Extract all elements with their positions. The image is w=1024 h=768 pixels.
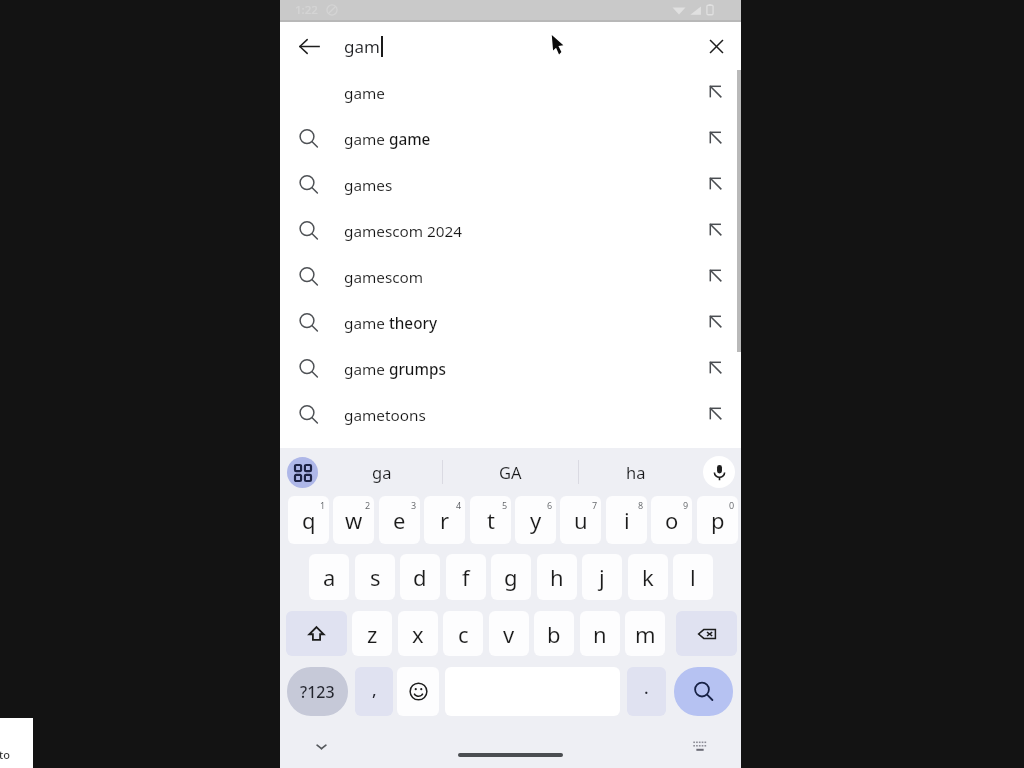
button[interactable]: ?123 (287, 667, 348, 716)
button[interactable]: Emoji (397, 667, 439, 716)
button[interactable]: w (333, 496, 374, 544)
button[interactable]: x (398, 611, 438, 656)
staticText: game (344, 83, 385, 104)
staticText: o (665, 505, 679, 535)
button[interactable]: game grumps (280, 346, 741, 392)
button[interactable]: t (470, 496, 511, 544)
button[interactable]: d (400, 554, 440, 600)
staticText: c (458, 619, 469, 649)
button[interactable]: gametoons (280, 392, 741, 438)
button[interactable]: Hide keyboard (307, 732, 335, 760)
button[interactable]: gamescom (280, 254, 741, 300)
staticText: l (690, 562, 696, 592)
button[interactable]: s (355, 554, 395, 600)
button[interactable]: b (534, 611, 574, 656)
button[interactable]: games (280, 162, 741, 208)
staticText: 4 (456, 499, 462, 511)
staticText: 1 (320, 499, 326, 511)
button[interactable]: Clear search (699, 29, 733, 63)
staticText: j (599, 562, 605, 592)
staticText: s (370, 562, 381, 592)
staticText: games (344, 175, 393, 196)
staticText: f (462, 562, 470, 592)
button[interactable]: Keyboard toolbar (287, 457, 318, 488)
button[interactable]: a (309, 554, 349, 600)
staticText: n (593, 619, 607, 649)
staticText: 5 (502, 499, 508, 511)
staticText: e (393, 505, 406, 535)
button[interactable]: Backspace (676, 611, 737, 656)
button[interactable]: Voice input (703, 456, 735, 488)
button[interactable]: e (379, 496, 420, 544)
button[interactable]: u (560, 496, 601, 544)
staticText: w (345, 505, 363, 535)
button[interactable]: k (628, 554, 668, 600)
button[interactable]: ha (579, 448, 693, 496)
staticText: 1:22 (295, 2, 318, 18)
button[interactable]: game (280, 70, 741, 116)
staticText: game game (344, 129, 431, 150)
button[interactable]: n (580, 611, 620, 656)
staticText: i (624, 505, 630, 535)
button[interactable]: Change keyboard (688, 734, 712, 758)
staticText: ha (626, 461, 646, 483)
button[interactable]: gamescom 2024 (280, 208, 741, 254)
staticText: r (440, 505, 450, 535)
staticText: t (487, 505, 495, 535)
staticText: 8 (638, 499, 644, 511)
button[interactable]: v (489, 611, 529, 656)
button[interactable]: GA (443, 448, 578, 496)
staticText: ga (372, 461, 392, 483)
button[interactable]: Search (674, 667, 733, 716)
button[interactable]: game theory (280, 300, 741, 346)
staticText: 0 (729, 499, 735, 511)
staticText: v (503, 619, 515, 649)
button[interactable]: y (515, 496, 556, 544)
staticText: p (711, 505, 725, 535)
staticText: gam (344, 35, 380, 58)
button[interactable]: ga (322, 448, 442, 496)
staticText: gametoons (344, 405, 426, 426)
button[interactable]: j (582, 554, 622, 600)
staticText: 7 (592, 499, 598, 511)
button[interactable]: l (673, 554, 713, 600)
staticText: 9 (683, 499, 689, 511)
button[interactable]: p (697, 496, 738, 544)
staticText: , (372, 678, 377, 701)
staticText: game theory (344, 313, 438, 334)
staticText: ?123 (300, 681, 335, 703)
staticText: g (504, 562, 518, 592)
button[interactable]: c (443, 611, 483, 656)
button[interactable]: h (537, 554, 577, 600)
staticText: q (302, 505, 316, 535)
button[interactable]: Back (292, 29, 326, 63)
button[interactable]: Shift (286, 611, 347, 656)
button[interactable]: f (446, 554, 486, 600)
staticText: m (635, 619, 656, 649)
staticText: . (644, 676, 649, 699)
staticText: 6 (547, 499, 553, 511)
button[interactable]: g (491, 554, 531, 600)
button[interactable]: . (627, 667, 666, 716)
staticText: gamescom (344, 267, 424, 288)
staticText: to (0, 747, 10, 762)
button[interactable]: , (355, 667, 393, 716)
staticText: z (367, 619, 378, 649)
staticText: y (530, 505, 542, 535)
button[interactable]: z (352, 611, 392, 656)
staticText: b (547, 619, 561, 649)
staticText: k (642, 562, 654, 592)
staticText: 3 (411, 499, 417, 511)
staticText: a (323, 562, 336, 592)
button[interactable]: m (625, 611, 665, 656)
staticText: h (550, 562, 564, 592)
button[interactable]: game game (280, 116, 741, 162)
staticText: u (574, 505, 588, 535)
button[interactable]: o (651, 496, 692, 544)
button[interactable]: i (606, 496, 647, 544)
staticText: x (412, 619, 424, 649)
button[interactable]: q (288, 496, 329, 544)
button[interactable]: r (424, 496, 465, 544)
